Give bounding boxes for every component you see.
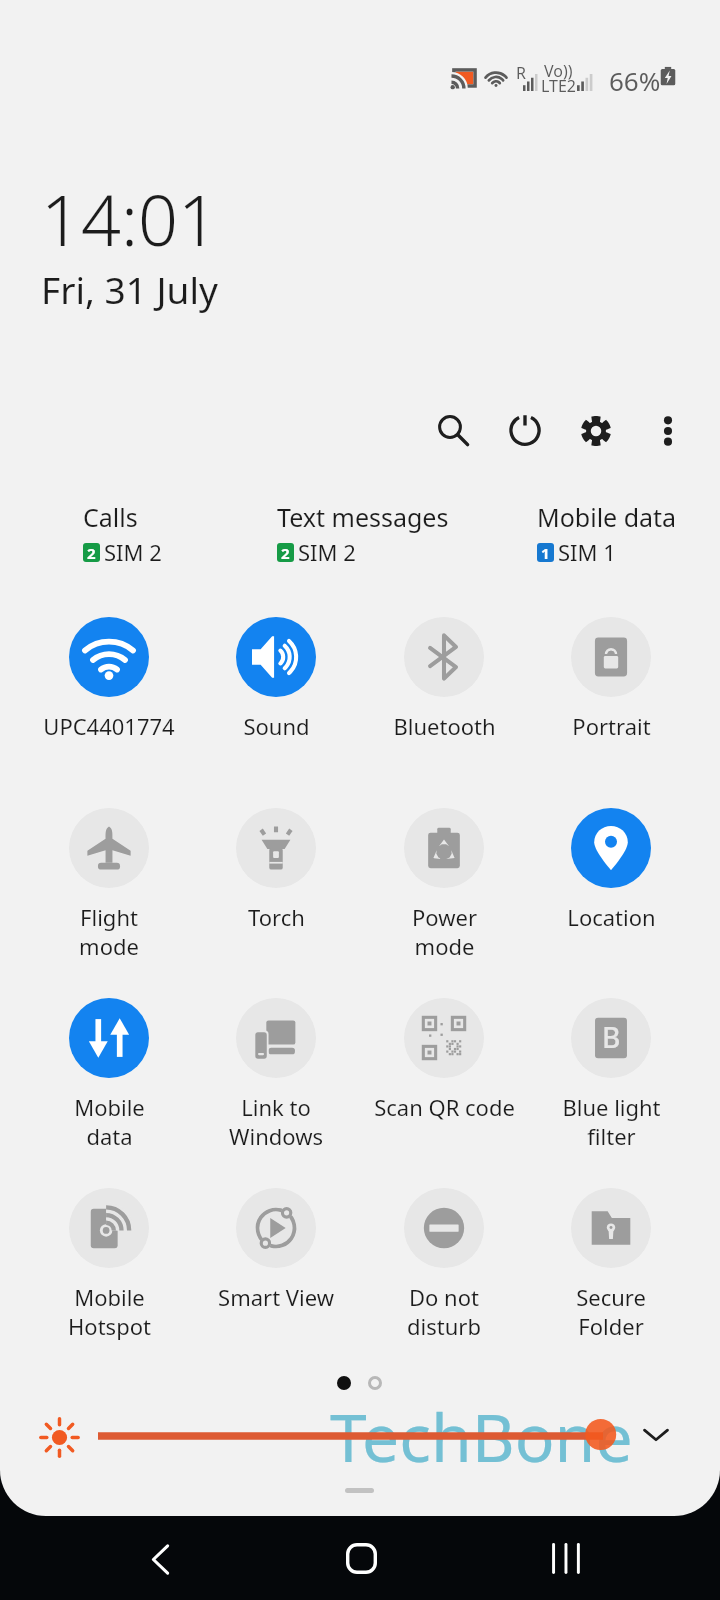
staticText: SIM 2 [298,537,356,567]
staticText: Torch [248,902,305,932]
staticText: Blue light filter [562,1092,661,1151]
staticText: Flight mode [79,902,139,961]
button[interactable]: Location [528,808,694,932]
staticText: Bluetooth [393,711,496,741]
staticText: 1 [541,543,550,562]
staticText: Fri, 31 July [41,264,218,314]
staticText: 66% [609,63,661,98]
staticText: Smart View [218,1282,334,1312]
staticText: Vo)) [544,60,573,82]
button[interactable]: Flight mode [26,808,192,961]
staticText: Portrait [572,711,651,741]
button[interactable]: Bluetooth [361,617,527,741]
staticText: B [602,1018,621,1056]
button[interactable]: Link to Windows [193,998,359,1151]
staticText: Mobile Hotspot [68,1282,151,1341]
button[interactable]: Mobile data [26,998,192,1151]
button[interactable]: Power off [497,400,553,456]
staticText: Scan QR code [374,1092,515,1122]
button[interactable]: B [528,998,694,1151]
button[interactable]: Mobile Hotspot [26,1188,192,1341]
staticText: Power mode [412,902,477,961]
staticText: Do not disturb [407,1282,481,1341]
staticText: R [516,62,526,84]
button[interactable]: Expand quick settings [634,1412,678,1456]
staticText: 14:01 [41,171,218,266]
button[interactable]: Recent apps [516,1516,612,1600]
staticText: Location [567,902,656,932]
staticText: Text messages [277,500,449,534]
button[interactable]: Power mode [361,808,527,961]
staticText: Secure Folder [576,1282,646,1341]
staticText: 2 [87,543,96,562]
button[interactable]: Back [112,1517,208,1600]
button[interactable]: More options [640,403,696,459]
button[interactable]: Settings [568,403,624,459]
button[interactable]: Do not disturb [361,1188,527,1341]
staticText: SIM 1 [558,537,616,567]
button[interactable]: Torch [193,808,359,932]
staticText: Mobile data [74,1092,145,1151]
staticText: UPC4401774 [43,711,175,741]
staticText: Mobile data [537,500,677,534]
staticText: SIM 2 [104,537,162,567]
staticText: Sound [243,711,310,741]
staticText: Calls [83,500,138,534]
button[interactable]: UPC4401774 [26,617,192,741]
button[interactable]: Home [313,1516,409,1600]
button[interactable]: Scan QR code [361,998,527,1122]
button[interactable]: Smart View [193,1188,359,1312]
staticText: 2 [281,543,290,562]
staticText: LTE2 [541,75,577,97]
staticText: Link to Windows [229,1092,323,1151]
button[interactable]: Search [426,403,482,459]
button[interactable]: Secure Folder [528,1188,694,1341]
staticText: TechBone [330,1391,633,1481]
button[interactable]: Sound [193,617,359,741]
button[interactable]: Portrait [528,617,694,741]
